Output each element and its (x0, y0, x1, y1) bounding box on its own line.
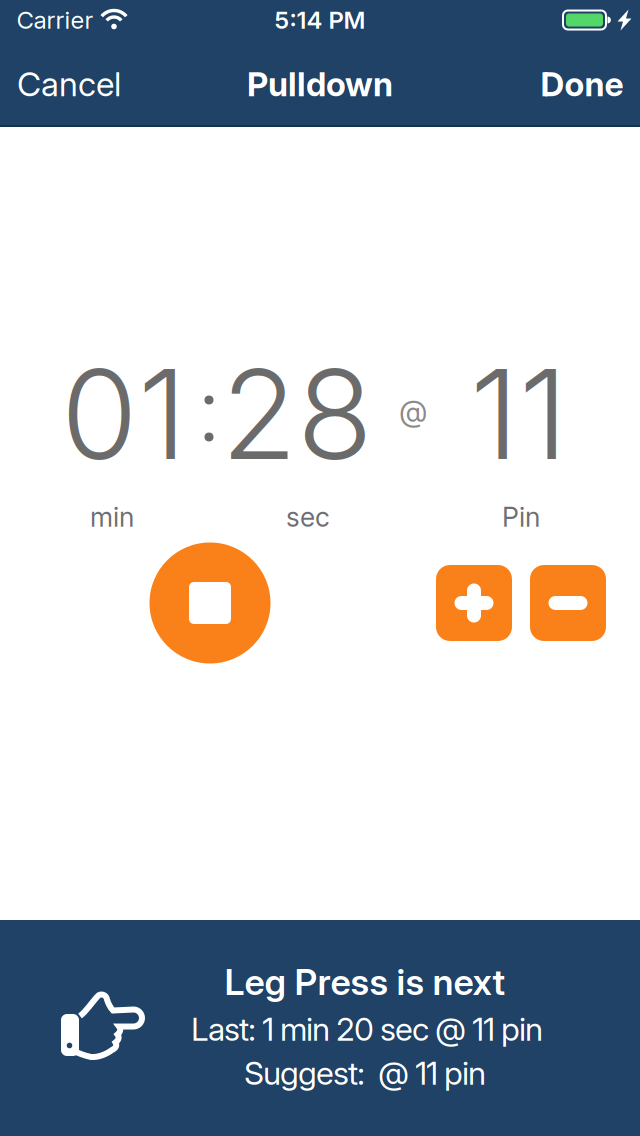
button[interactable]: Cancel (9, 54, 129, 114)
staticText: Done (540, 64, 623, 104)
staticText: @ (399, 394, 427, 428)
staticText: 28 (221, 341, 373, 487)
staticText: Carrier (16, 6, 93, 34)
staticText: Pulldown (247, 64, 393, 104)
staticText: sec (286, 501, 330, 533)
staticText: min (90, 501, 134, 533)
button[interactable] (149, 542, 270, 663)
staticText: 5:14 PM (274, 6, 365, 34)
staticText: 01 (61, 341, 187, 487)
button[interactable] (530, 565, 606, 641)
staticText: Cancel (17, 64, 121, 104)
staticText: Leg Press is next (224, 961, 505, 1003)
button[interactable] (436, 565, 512, 641)
staticText: Suggest: @ 11 pin (244, 1054, 486, 1092)
staticText: 11 (470, 341, 568, 487)
button[interactable]: Done (532, 54, 631, 114)
staticText: Pin (502, 501, 540, 533)
staticText: Last: 1 min 20 sec @ 11 pin (191, 1010, 543, 1048)
